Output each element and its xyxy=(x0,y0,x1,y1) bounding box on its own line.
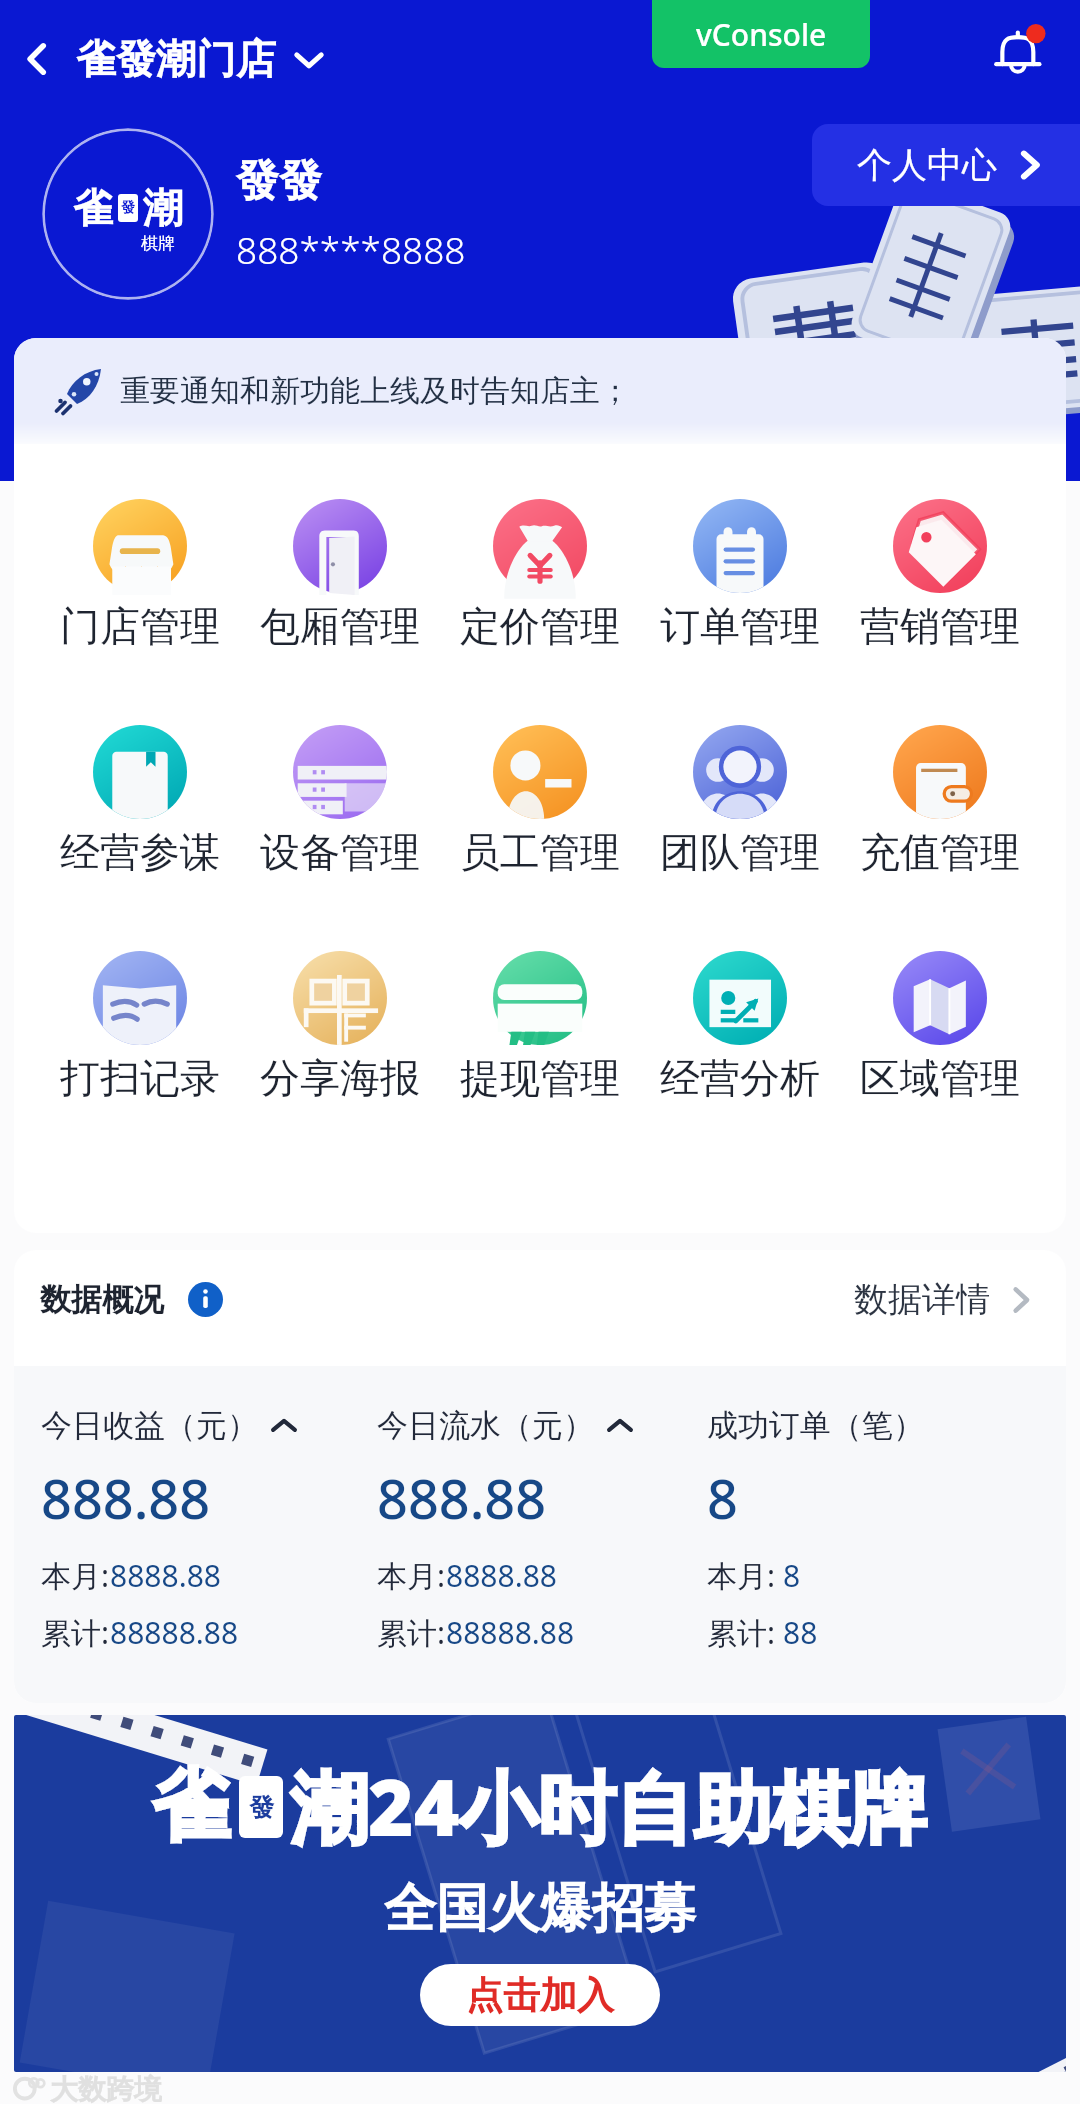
button[interactable]: Info xyxy=(186,1280,224,1318)
button[interactable]: Back xyxy=(6,27,70,91)
button[interactable]: 分享海报 xyxy=(240,951,440,1103)
staticText: 数据详情 xyxy=(854,1278,990,1321)
staticText: 潮 xyxy=(143,183,183,233)
staticText: 本月: xyxy=(377,1555,446,1596)
staticText: 设备管理 xyxy=(260,827,420,877)
button[interactable]: 今日流水（元） xyxy=(377,1406,707,1653)
staticText: 發 xyxy=(249,1792,274,1823)
button[interactable]: 重要通知和新功能上线及时告知店主； xyxy=(14,338,1066,444)
staticText: 数据概况 xyxy=(40,1280,164,1319)
button[interactable]: 区域管理 xyxy=(840,951,1040,1103)
staticText: 定价管理 xyxy=(460,601,620,651)
staticText: 点击加入 xyxy=(466,1972,614,2019)
staticText: 营销管理 xyxy=(860,601,1020,651)
staticText: 棋牌 xyxy=(141,233,175,254)
button[interactable]: 成功订单（笔） xyxy=(707,1406,1066,1653)
staticText: 分享海报 xyxy=(260,1053,420,1103)
staticText: 88 xyxy=(783,1612,818,1653)
staticText: 今日流水（元） xyxy=(377,1406,594,1445)
staticText: 打扫记录 xyxy=(60,1053,220,1103)
staticText: 包厢管理 xyxy=(260,601,420,651)
button[interactable]: 团队管理 xyxy=(640,725,840,877)
button[interactable]: 雀發潮门店 xyxy=(76,0,326,118)
button[interactable]: 门店管理 xyxy=(40,499,240,651)
staticText: 888****8888 xyxy=(236,224,466,274)
staticText: 888.88 xyxy=(377,1461,547,1535)
staticText: 8888.88 xyxy=(110,1555,221,1596)
staticText: 门店管理 xyxy=(60,601,220,651)
staticText: 累计: xyxy=(377,1612,446,1653)
button[interactable]: Store avatar xyxy=(42,128,214,300)
button[interactable]: 数据详情 xyxy=(854,1278,1040,1321)
button[interactable]: 点击加入 xyxy=(420,1964,660,2026)
staticText: 大数跨境 xyxy=(50,2072,162,2104)
button[interactable]: 雀 xyxy=(14,1715,1066,2072)
staticText: 累计: xyxy=(41,1612,110,1653)
button[interactable]: Notifications xyxy=(984,21,1056,93)
staticText: 雀 xyxy=(152,1758,230,1856)
staticText: 88888.88 xyxy=(446,1612,575,1653)
staticText: 8 xyxy=(707,1461,738,1535)
staticText: 成功订单（笔） xyxy=(707,1406,924,1445)
button[interactable]: 打扫记录 xyxy=(40,951,240,1103)
staticText: vConsole xyxy=(696,14,827,55)
button[interactable]: vConsole xyxy=(652,0,870,68)
button[interactable]: 充值管理 xyxy=(840,725,1040,877)
staticText: 订单管理 xyxy=(660,601,820,651)
staticText: 本月: xyxy=(41,1555,110,1596)
staticText: 全国火爆招募 xyxy=(384,1876,696,1942)
button[interactable]: 设备管理 xyxy=(240,725,440,877)
staticText: 员工管理 xyxy=(460,827,620,877)
staticText: 充值管理 xyxy=(860,827,1020,877)
staticText: 發 xyxy=(121,199,135,217)
staticText: 888.88 xyxy=(41,1461,211,1535)
staticText: 经营分析 xyxy=(660,1053,820,1103)
staticText: 8888.88 xyxy=(446,1555,557,1596)
button[interactable]: 营销管理 xyxy=(840,499,1040,651)
button[interactable]: 经营分析 xyxy=(640,951,840,1103)
staticText: 累计: xyxy=(707,1612,783,1653)
staticText: 个人中心 xyxy=(857,143,997,187)
staticText: 经营参谋 xyxy=(60,827,220,877)
staticText: 雀發潮门店 xyxy=(76,34,276,84)
staticText: 今日收益（元） xyxy=(41,1406,258,1445)
staticText: 提现管理 xyxy=(460,1053,620,1103)
button[interactable]: 员工管理 xyxy=(440,725,640,877)
staticText: 8 xyxy=(783,1555,801,1596)
staticText: 区域管理 xyxy=(860,1053,1020,1103)
button[interactable]: 定价管理 xyxy=(440,499,640,651)
button[interactable]: 经营参谋 xyxy=(40,725,240,877)
button[interactable]: 包厢管理 xyxy=(240,499,440,651)
staticText: 本月: xyxy=(707,1555,783,1596)
staticText: 88888.88 xyxy=(110,1612,239,1653)
staticText: 發發 xyxy=(236,154,322,208)
staticText: 团队管理 xyxy=(660,827,820,877)
button[interactable]: 提现管理 xyxy=(440,951,640,1103)
staticText: 重要通知和新功能上线及时告知店主； xyxy=(120,372,630,410)
button[interactable]: 订单管理 xyxy=(640,499,840,651)
button[interactable]: 个人中心 xyxy=(812,124,1080,206)
staticText: 潮24小时自助棋牌 xyxy=(290,1753,928,1860)
staticText: 雀 xyxy=(73,183,113,233)
button[interactable]: 今日收益（元） xyxy=(41,1406,377,1653)
